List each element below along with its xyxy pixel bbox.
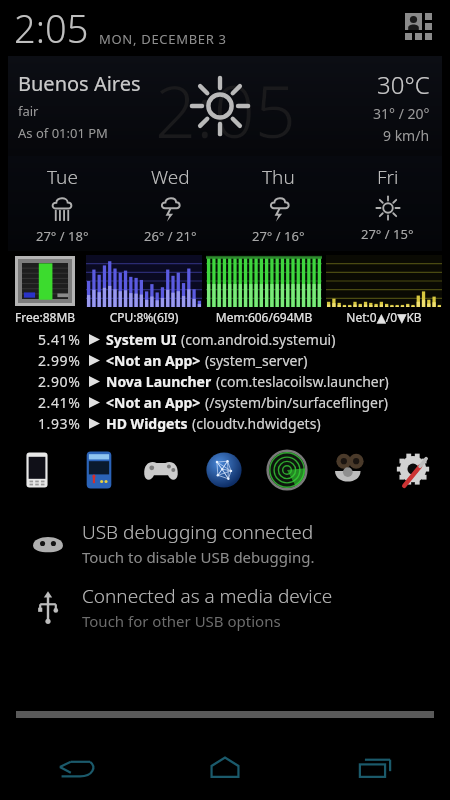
button[interactable]: Back (0, 734, 150, 800)
button[interactable]: 1.93% (38, 413, 450, 434)
button[interactable]: Wed (116, 156, 224, 251)
button[interactable]: Games (130, 442, 192, 498)
button[interactable]: Fri (333, 156, 442, 251)
button[interactable]: Connected as a media device (0, 576, 450, 638)
button[interactable]: Thu (224, 156, 333, 251)
staticText: 1.93% (38, 414, 81, 433)
button[interactable]: 2:05 (8, 56, 442, 156)
staticText: HD Widgets (106, 414, 188, 433)
button[interactable]: 5.41% (38, 329, 450, 350)
button[interactable]: Network (192, 442, 255, 498)
staticText: Touch to disable USB debugging. (82, 547, 315, 567)
staticText: 2.41% (38, 393, 81, 412)
staticText: As of 01:01 PM (18, 124, 108, 142)
button[interactable]: Recent apps (300, 734, 450, 800)
staticText: 2.90% (38, 372, 81, 391)
staticText: 27° / 18° (36, 227, 89, 245)
staticText: (com.android.systemui) (181, 330, 336, 349)
staticText: Fri (377, 164, 399, 190)
staticText: 31° / 20° (373, 104, 430, 123)
staticText: Mem:606/694MB (206, 309, 322, 325)
button[interactable]: Arcade (68, 442, 130, 498)
staticText: CPU:8%(6I9) (86, 309, 202, 325)
button[interactable]: Radar (255, 442, 318, 498)
button[interactable]: Home (150, 734, 300, 800)
staticText: Connected as a media device (82, 583, 333, 609)
staticText: <Not an App> (106, 351, 201, 370)
staticText: Net:0▲/0▼KB (326, 309, 442, 325)
staticText: 30°C (377, 68, 430, 101)
staticText: System UI (106, 330, 177, 349)
staticText: Wed (151, 164, 190, 190)
button[interactable]: Media (318, 442, 381, 498)
button[interactable]: 2.90% (38, 371, 450, 392)
staticText: MON, DECEMBER 3 (99, 30, 227, 48)
button[interactable]: 2.41% (38, 392, 450, 413)
staticText: Tue (47, 164, 78, 190)
button[interactable]: Free:88MB (6, 255, 444, 327)
button[interactable]: USB debugging connected (0, 510, 450, 576)
staticText: 26° / 21° (144, 227, 197, 245)
button[interactable]: Phone (6, 442, 68, 498)
staticText: Touch for other USB options (82, 611, 281, 631)
button[interactable]: Tue (8, 156, 116, 251)
staticText: 2:05 (155, 61, 296, 159)
staticText: Buenos Aires (18, 70, 141, 97)
staticText: USB debugging connected (82, 519, 314, 545)
staticText: Nova Launcher (106, 372, 212, 391)
staticText: (com.teslacoilsw.launcher) (216, 372, 389, 391)
staticText: <Not an App> (106, 393, 201, 412)
staticText: (system_server) (205, 351, 308, 370)
staticText: 9 km/h (383, 126, 430, 145)
staticText: 5.41% (38, 330, 81, 349)
staticText: (/system/bin/surfaceflinger) (205, 393, 388, 412)
staticText: (cloudtv.hdwidgets) (192, 414, 321, 433)
staticText: 27° / 16° (252, 227, 305, 245)
button[interactable]: Settings (381, 442, 444, 498)
button[interactable]: Quick settings (400, 8, 440, 48)
staticText: 27° / 15° (361, 225, 414, 243)
button[interactable]: 2.99% (38, 350, 450, 371)
staticText: 2.99% (38, 351, 81, 370)
staticText: 2:05 (14, 2, 89, 54)
staticText: fair (18, 102, 39, 120)
staticText: Free:88MB (15, 309, 76, 325)
staticText: Thu (262, 164, 295, 190)
